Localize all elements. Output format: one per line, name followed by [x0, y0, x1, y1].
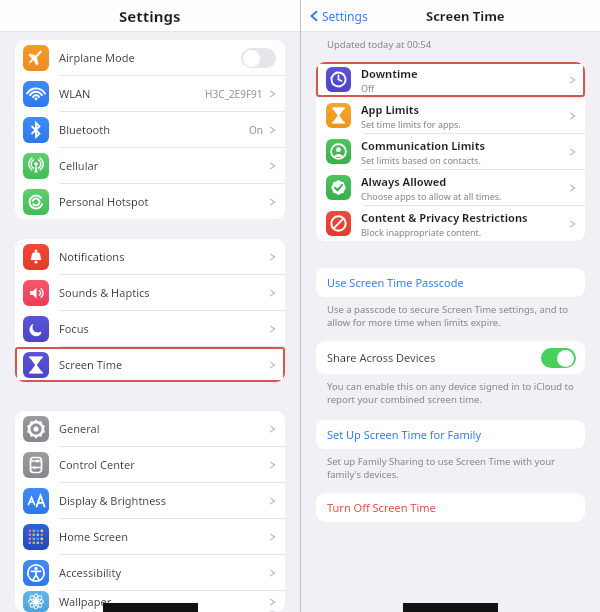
staticText: Settings [322, 8, 368, 24]
staticText: Set time limits for apps. [361, 118, 461, 130]
staticText: Off [361, 82, 375, 94]
staticText: Communication Limits [361, 138, 485, 153]
staticText: Share Across Devices [327, 350, 436, 365]
staticText: Notifications [59, 249, 125, 264]
staticText: Choose apps to allow at all times. [361, 190, 502, 202]
button[interactable]: Always Allowed [316, 170, 585, 205]
staticText: Always Allowed [361, 174, 447, 189]
staticText: App Limits [361, 102, 420, 117]
button[interactable]: Content & Privacy Restrictions [316, 206, 585, 241]
staticText: Cellular [59, 158, 99, 173]
button[interactable]: Set Up Screen Time for Family [316, 420, 585, 449]
button[interactable]: Bluetooth [15, 112, 285, 147]
button[interactable]: General [15, 411, 285, 446]
staticText: Turn Off Screen Time [327, 500, 436, 515]
button[interactable]: Sounds & Haptics [15, 275, 285, 310]
staticText: Accessibility [59, 565, 122, 580]
button[interactable]: Wallpaper [15, 591, 285, 612]
staticText: Focus [59, 321, 89, 336]
button[interactable]: Airplane Mode [15, 40, 285, 75]
staticText: Control Center [59, 457, 135, 472]
staticText: Use Screen Time Passcode [327, 275, 464, 290]
button[interactable]: Home Screen [15, 519, 285, 554]
staticText: Display & Brightness [59, 493, 166, 508]
staticText: Airplane Mode [59, 50, 135, 65]
staticText: General [59, 421, 100, 436]
button[interactable]: WLAN [15, 76, 285, 111]
staticText: Screen Time [426, 7, 505, 25]
staticText: Set limits based on contacts. [361, 154, 481, 166]
staticText: Content & Privacy Restrictions [361, 210, 528, 225]
staticText: Updated today at 00:54 [327, 38, 432, 51]
button[interactable]: Communication Limits [316, 134, 585, 169]
button[interactable]: Cellular [15, 148, 285, 183]
staticText: Wallpaper [59, 594, 112, 609]
staticText: Personal Hotspot [59, 194, 149, 209]
button[interactable]: Turn Off Screen Time [316, 493, 585, 522]
button[interactable]: Toggle on [541, 348, 576, 368]
staticText: Settings [119, 6, 181, 26]
staticText: H3C_2E9F91 [205, 87, 263, 101]
other: Back [309, 9, 319, 23]
staticText: You can enable this on any device signed… [327, 380, 574, 406]
button[interactable]: Focus [15, 311, 285, 346]
button[interactable]: Screen Time [15, 347, 285, 382]
staticText: Use a passcode to secure Screen Time set… [327, 303, 569, 329]
button[interactable]: Share Across Devices [316, 341, 585, 374]
staticText: Sounds & Haptics [59, 285, 150, 300]
staticText: Set up Family Sharing to use Screen Time… [327, 455, 555, 481]
button[interactable]: Notifications [15, 239, 285, 274]
staticText: Block inappropriate content. [361, 226, 482, 238]
staticText: Home Screen [59, 529, 129, 544]
staticText: Downtime [361, 66, 418, 81]
button[interactable]: Accessibility [15, 555, 285, 590]
button[interactable]: Back [309, 8, 368, 24]
button[interactable]: Use Screen Time Passcode [316, 268, 585, 297]
staticText: Screen Time [59, 357, 123, 372]
staticText: On [249, 123, 263, 137]
button[interactable]: Downtime [316, 62, 585, 97]
button[interactable]: Toggle off [241, 48, 276, 68]
button[interactable]: Personal Hotspot [15, 184, 285, 219]
button[interactable]: App Limits [316, 98, 585, 133]
button[interactable]: Display & Brightness [15, 483, 285, 518]
staticText: Bluetooth [59, 122, 111, 137]
staticText: WLAN [59, 86, 91, 101]
button[interactable]: Control Center [15, 447, 285, 482]
staticText: Set Up Screen Time for Family [327, 427, 482, 442]
